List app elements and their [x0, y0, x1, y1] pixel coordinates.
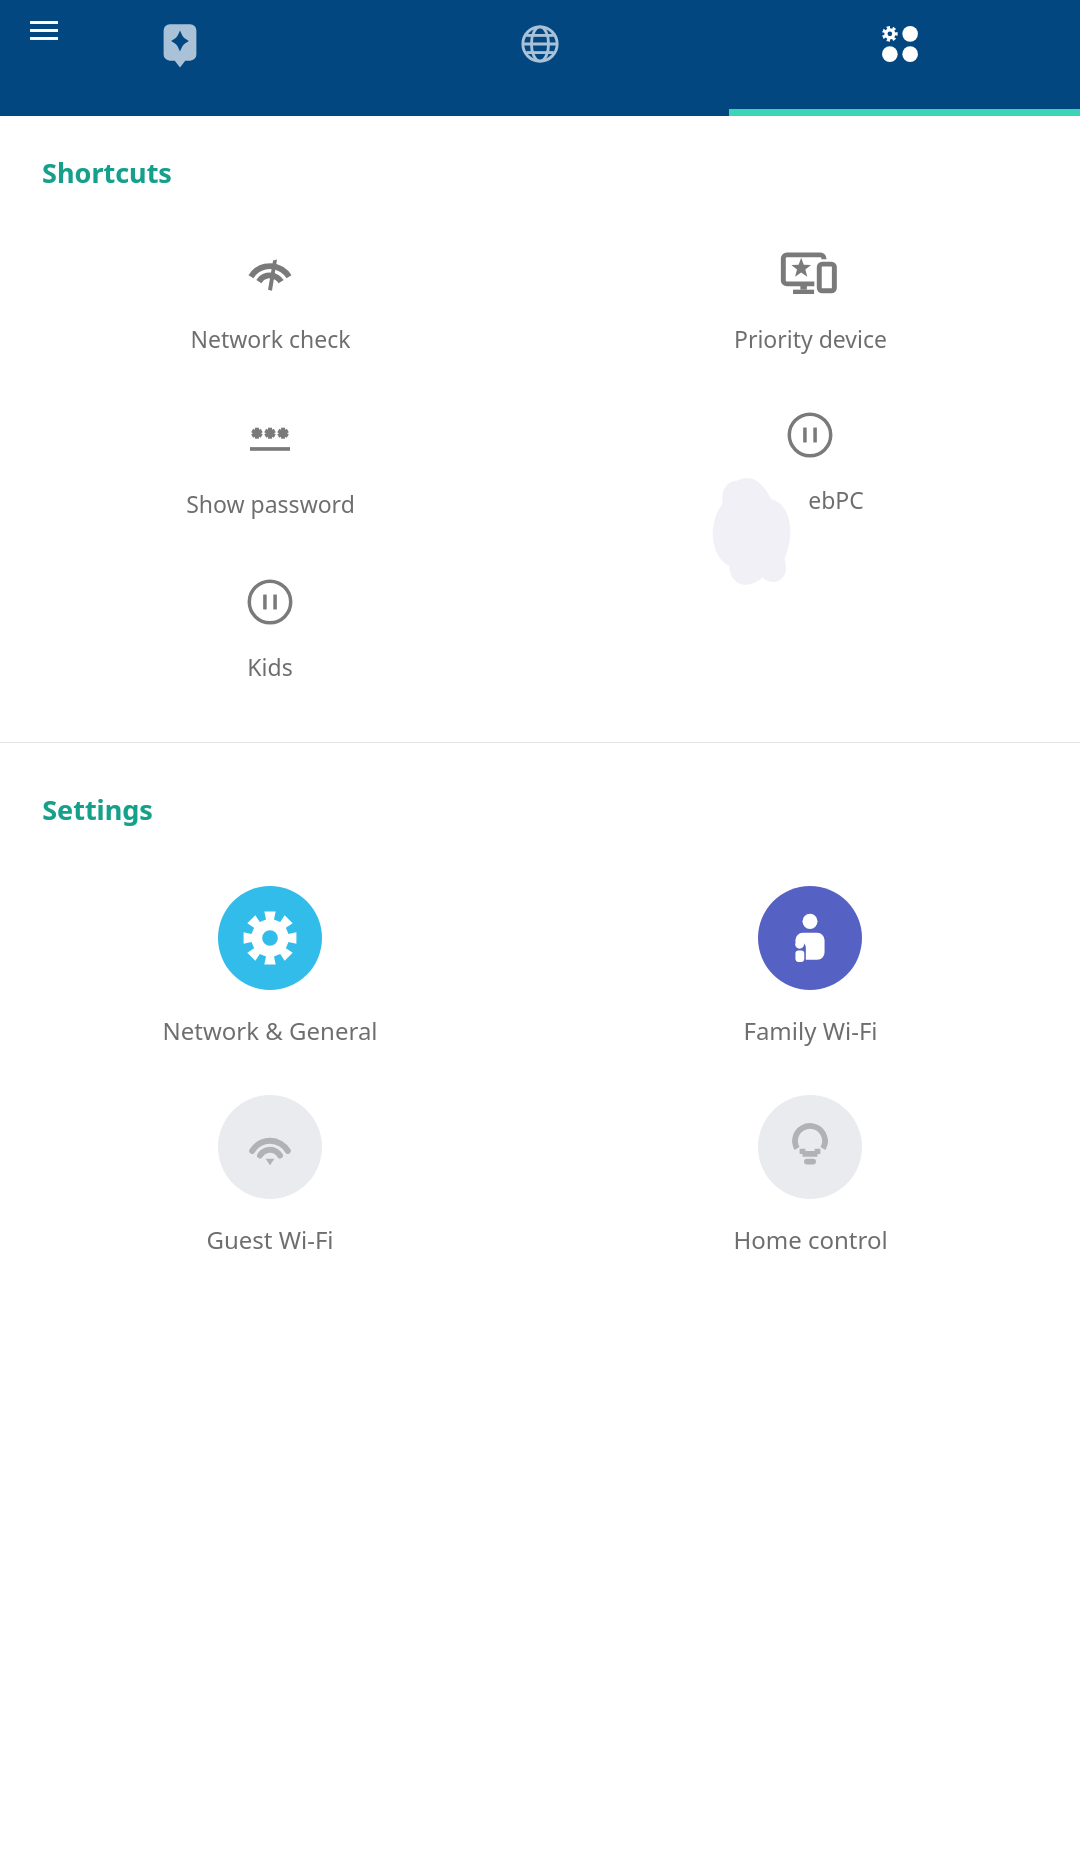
- staticText: Show password: [186, 488, 355, 519]
- button[interactable]: Network check: [0, 241, 540, 358]
- button[interactable]: Home control: [540, 1091, 1080, 1260]
- staticText: Family Wi-Fi: [743, 1014, 878, 1047]
- staticText: Guest Wi-Fi: [206, 1223, 334, 1256]
- staticText: Kids: [247, 651, 293, 682]
- staticText: ebPC: [808, 484, 864, 515]
- staticText: Settings: [42, 791, 153, 828]
- button[interactable]: ebPC: [540, 406, 1080, 521]
- staticText: Network & General: [162, 1014, 378, 1047]
- staticText: Network check: [190, 323, 351, 354]
- button[interactable]: Family Wi-Fi: [540, 882, 1080, 1051]
- button[interactable]: Open navigation menu: [20, 6, 68, 54]
- button[interactable]: Settings tab: [720, 0, 1080, 52]
- staticText: Shortcuts: [42, 154, 172, 191]
- button[interactable]: Show password: [0, 406, 540, 523]
- button[interactable]: Internet tab: [360, 0, 720, 52]
- button[interactable]: Assistant tab: [0, 0, 360, 52]
- button[interactable]: Network & General: [0, 882, 540, 1051]
- button[interactable]: Guest Wi-Fi: [0, 1091, 540, 1260]
- staticText: Priority device: [734, 323, 887, 354]
- staticText: Home control: [733, 1223, 888, 1256]
- button[interactable]: Kids: [0, 569, 540, 686]
- button[interactable]: Priority device: [540, 241, 1080, 358]
